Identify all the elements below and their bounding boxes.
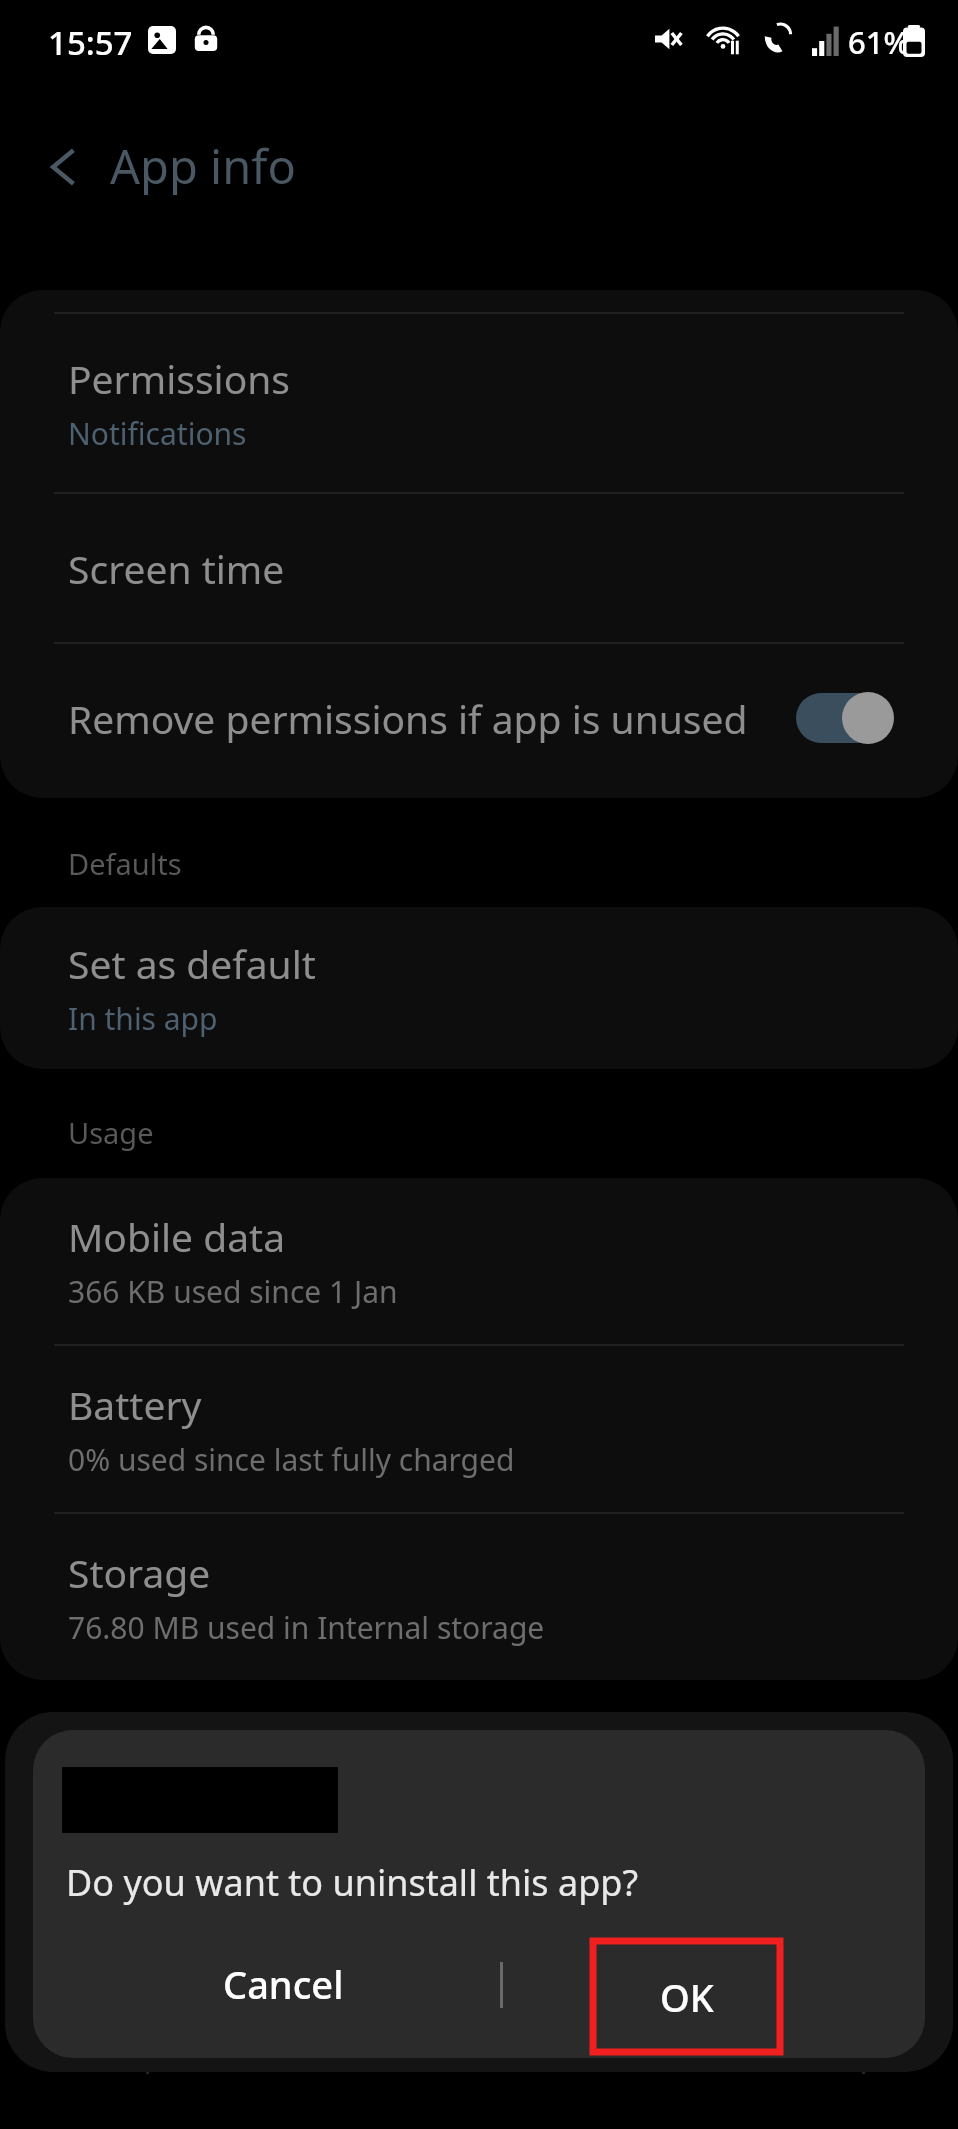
staticText: Usage (68, 1113, 154, 1152)
button[interactable]: Remove permissions toggle (796, 692, 898, 744)
staticText: OK (660, 1971, 714, 2023)
staticText: App info (110, 134, 296, 198)
staticText: 366 KB used since 1 Jan (68, 1271, 398, 1312)
button[interactable]: Remove permissions if app is unused (0, 644, 958, 792)
staticText: Do you want to uninstall this app? (66, 1858, 639, 1907)
staticText: Notifications (68, 413, 247, 454)
button[interactable]: OK (593, 1941, 780, 2052)
staticText: Uninstall (411, 2031, 548, 2076)
staticText: In this app (68, 998, 218, 1039)
button[interactable]: Back (30, 132, 100, 202)
button[interactable]: Set as default (0, 907, 958, 1069)
button[interactable]: Force stop (639, 1993, 958, 2113)
button[interactable]: Uninstall (320, 1993, 639, 2113)
staticText: Defaults (68, 844, 182, 883)
button[interactable]: Open (0, 1993, 320, 2113)
staticText: Set as default (68, 937, 316, 990)
staticText: Remove permissions if app is unused (68, 692, 748, 745)
button[interactable]: Cancel (163, 1928, 403, 2040)
button[interactable]: Mobile data (0, 1178, 958, 1344)
staticText: 0% used since last fully charged (68, 1439, 515, 1480)
staticText: Mobile data (68, 1210, 286, 1263)
staticText: Open (117, 2031, 203, 2076)
staticText: Force stop (718, 2031, 880, 2076)
staticText: Storage (68, 1546, 211, 1599)
staticText: 15:57 (48, 20, 133, 65)
staticText: Cancel (223, 1958, 344, 2010)
button[interactable]: Storage (0, 1514, 958, 1680)
button[interactable]: Permissions (0, 314, 958, 492)
staticText: 76.80 MB used in Internal storage (68, 1607, 545, 1648)
button[interactable]: Battery (0, 1346, 958, 1512)
staticText: Battery (68, 1378, 202, 1431)
button[interactable]: Screen time (0, 494, 958, 642)
staticText: Screen time (68, 542, 285, 595)
staticText: Permissions (68, 352, 291, 405)
staticText: 61% (848, 21, 910, 63)
